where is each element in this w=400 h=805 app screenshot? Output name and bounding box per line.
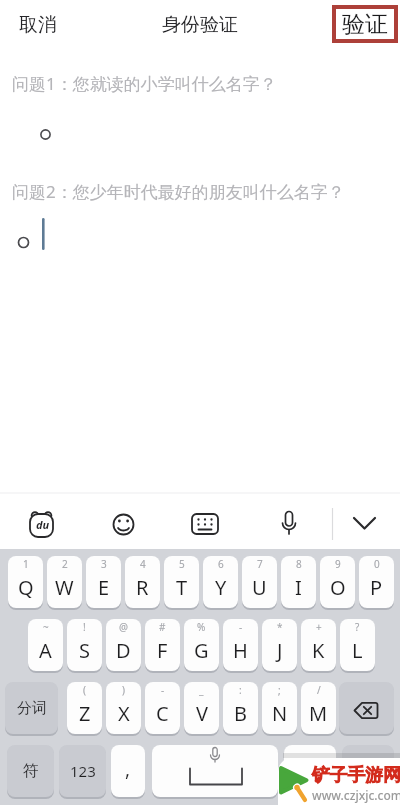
staticText: 5 [179, 557, 185, 571]
staticText: 验证 [342, 10, 388, 39]
staticText: X [118, 700, 130, 727]
staticText: B [234, 700, 247, 727]
button[interactable]: - [223, 619, 258, 671]
button[interactable]: ? [340, 619, 375, 671]
staticText: - [161, 683, 165, 697]
button[interactable]: _ [184, 682, 219, 734]
staticText: C [156, 700, 169, 727]
staticText: 符 [23, 761, 39, 781]
staticText: U [252, 574, 267, 601]
staticText: ? [355, 620, 360, 634]
staticText: H [233, 637, 248, 664]
button[interactable] [339, 682, 394, 734]
button[interactable]: % [184, 619, 219, 671]
button[interactable]: + [301, 619, 336, 671]
button[interactable]: 8 [281, 556, 316, 608]
staticText: ( [83, 683, 86, 697]
button[interactable]: 5 [164, 556, 199, 608]
staticText: - [239, 620, 243, 634]
staticText: @ [119, 620, 128, 634]
staticText: ) [122, 683, 125, 697]
button[interactable]: 0 [359, 556, 394, 608]
staticText: 身份验证 [162, 13, 238, 37]
button[interactable] [284, 745, 336, 797]
button[interactable] [342, 745, 394, 797]
button[interactable]: / [301, 682, 336, 734]
staticText: www.czjxjc.com [312, 787, 400, 803]
button[interactable]: 分词 [5, 682, 58, 734]
staticText: S [79, 637, 90, 664]
staticText: + [316, 620, 322, 634]
staticText: 分词 [17, 699, 47, 718]
button[interactable] [189, 508, 221, 540]
staticText: : [239, 683, 242, 697]
button[interactable]: # [145, 619, 180, 671]
button[interactable]: : [223, 682, 258, 734]
button[interactable]: ~ [28, 619, 63, 671]
staticText: 9 [335, 557, 341, 571]
staticText: 取消 [19, 13, 57, 37]
button[interactable]: 6 [203, 556, 238, 608]
button[interactable]: , [111, 745, 145, 797]
staticText: I [295, 574, 302, 601]
staticText: 问题1：您就读的小学叫什么名字？ [12, 72, 277, 95]
staticText: W [55, 574, 74, 601]
staticText: 7 [257, 557, 263, 571]
button[interactable]: 4 [125, 556, 160, 608]
staticText: N [272, 700, 288, 727]
button[interactable]: 2 [47, 556, 82, 608]
staticText: _ [199, 683, 204, 697]
staticText: ; [278, 683, 281, 697]
staticText: Q [18, 574, 34, 601]
staticText: ~ [43, 620, 49, 634]
button[interactable]: * [262, 619, 297, 671]
button[interactable]: 9 [320, 556, 355, 608]
button[interactable]: 123 [59, 745, 106, 797]
button[interactable]: ! [67, 619, 102, 671]
button[interactable]: 7 [242, 556, 277, 608]
staticText: F [157, 637, 168, 664]
staticText: Y [215, 574, 227, 601]
button[interactable]: ; [262, 682, 297, 734]
staticText: T [176, 574, 188, 601]
staticText: J [277, 637, 283, 664]
button[interactable] [273, 508, 305, 540]
staticText: Z [79, 700, 91, 727]
staticText: D [116, 637, 131, 664]
staticText: * [277, 620, 283, 634]
staticText: M [309, 700, 328, 727]
button[interactable]: ( [67, 682, 102, 734]
staticText: , [125, 756, 131, 782]
staticText: ! [83, 620, 86, 634]
button[interactable]: - [145, 682, 180, 734]
staticText: # [159, 620, 166, 634]
button[interactable]: ) [106, 682, 141, 734]
staticText: 2 [62, 557, 68, 571]
staticText: 4 [140, 557, 146, 571]
button[interactable] [108, 508, 140, 540]
staticText: 6 [218, 557, 224, 571]
staticText: A [39, 637, 52, 664]
button[interactable]: @ [106, 619, 141, 671]
staticText: 问题2：您少年时代最好的朋友叫什么名字？ [12, 180, 345, 203]
staticText: 3 [101, 557, 107, 571]
staticText: K [312, 637, 325, 664]
staticText: 1 [23, 557, 29, 571]
staticText: G [194, 637, 209, 664]
button[interactable]: 符 [7, 745, 54, 797]
button[interactable]: 验证 [332, 5, 398, 43]
staticText: 0 [374, 557, 380, 571]
button[interactable] [152, 745, 278, 797]
staticText: R [136, 574, 149, 601]
staticText: 8 [296, 557, 302, 571]
button[interactable]: 1 [8, 556, 43, 608]
staticText: P [370, 574, 383, 601]
button[interactable] [349, 508, 381, 540]
staticText: % [197, 620, 206, 634]
button[interactable] [26, 510, 58, 542]
staticText: E [98, 574, 110, 601]
staticText: O [330, 574, 346, 601]
button[interactable]: 3 [86, 556, 121, 608]
staticText: L [352, 637, 363, 664]
button[interactable]: 取消 [19, 13, 57, 37]
